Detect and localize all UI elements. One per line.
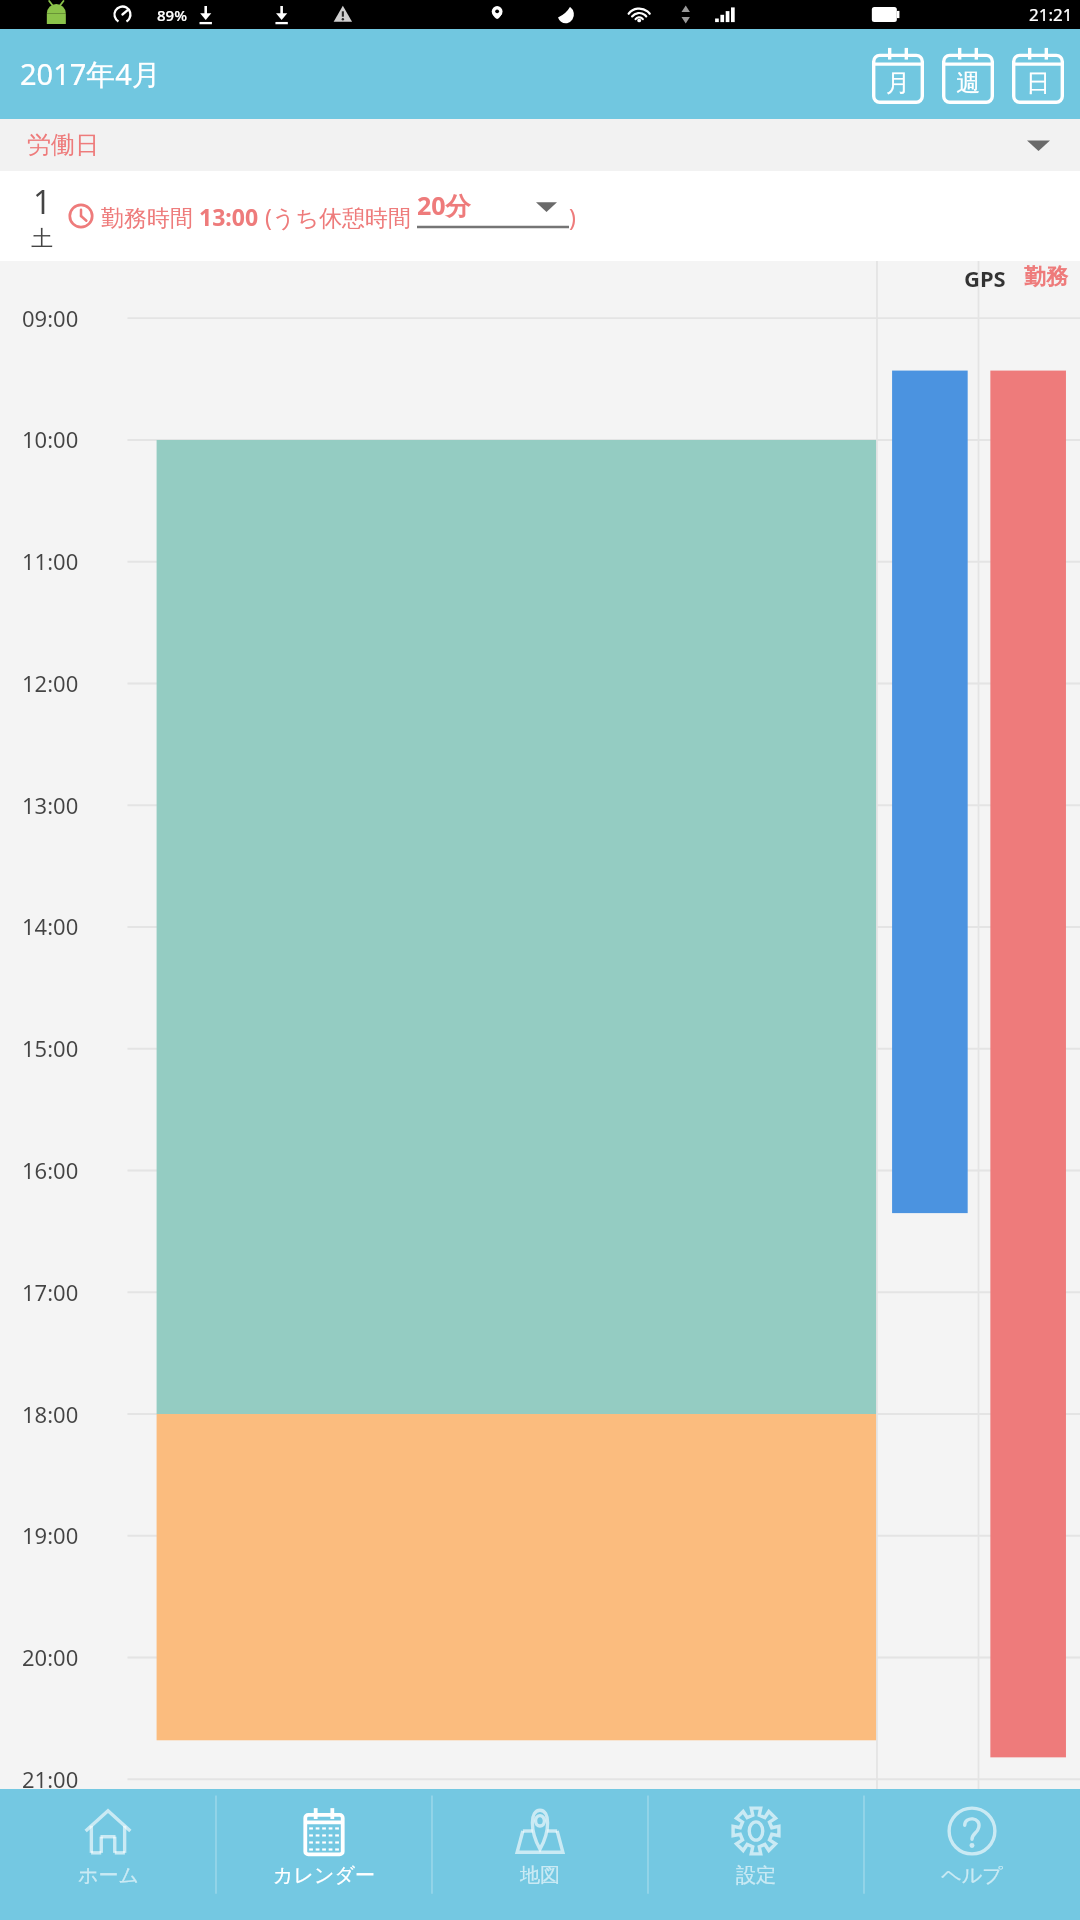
staticText: 13:00 (199, 201, 259, 232)
staticText: ヘルプ (941, 1863, 1003, 1888)
staticText: 設定 (736, 1863, 776, 1888)
staticText: 月 (886, 68, 910, 98)
staticText: 労働日 (27, 130, 99, 160)
staticText: 日 (1026, 68, 1050, 98)
staticText: GPS (964, 263, 1006, 293)
button[interactable]: ヘルプ (864, 1789, 1080, 1920)
staticText: 地図 (520, 1863, 560, 1888)
staticText: 89% (157, 5, 187, 25)
staticText: 1 (33, 180, 52, 224)
button[interactable]: ホーム (0, 1789, 216, 1920)
staticText: 週 (956, 68, 980, 98)
staticText: 17:00 (22, 1277, 79, 1307)
staticText: 土 (31, 225, 53, 253)
staticText: 21:21 (1029, 3, 1073, 26)
staticText: 14:00 (22, 911, 79, 941)
button[interactable]: 地図 (432, 1789, 648, 1920)
staticText: 21:00 (22, 1764, 79, 1794)
staticText: カレンダー (273, 1863, 375, 1888)
staticText: 勤務 (1024, 263, 1068, 291)
staticText: 15:00 (22, 1033, 79, 1063)
button[interactable]: 週 (934, 35, 1002, 113)
button[interactable]: 設定 (648, 1789, 864, 1920)
button[interactable]: カレンダー (216, 1789, 432, 1920)
staticText: 勤務時間 (101, 201, 199, 232)
button[interactable]: 日 (1004, 35, 1072, 113)
staticText: 20分 (417, 188, 471, 222)
staticText: 16:00 (22, 1155, 79, 1185)
button[interactable]: 月 (864, 35, 932, 113)
button[interactable]: 20分 (417, 186, 569, 246)
staticText: ホーム (78, 1863, 139, 1888)
staticText: 11:00 (22, 546, 79, 576)
staticText: 10:00 (22, 424, 79, 454)
staticText: 09:00 (22, 303, 79, 333)
staticText: (うち休憩時間 (259, 201, 411, 232)
staticText: 12:00 (22, 668, 79, 698)
staticText: ) (569, 201, 576, 232)
staticText: 13:00 (22, 790, 79, 820)
staticText: 20:00 (22, 1642, 79, 1672)
staticText: 18:00 (22, 1399, 79, 1429)
button[interactable]: 労働日 (0, 119, 1080, 171)
staticText: 19:00 (22, 1520, 79, 1550)
staticText: 2017年4月 (20, 54, 161, 94)
